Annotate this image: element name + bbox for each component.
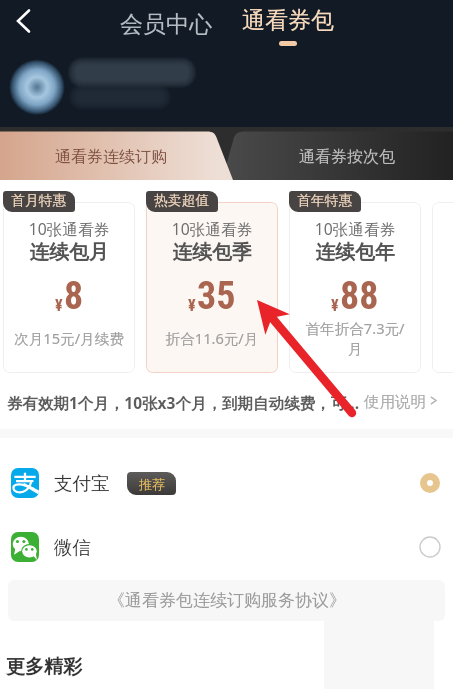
staticText: 通看券包 — [242, 6, 334, 35]
staticText: 首月特惠 — [11, 192, 67, 209]
staticText: ¥ — [188, 296, 196, 315]
button[interactable]: Back — [2, 3, 40, 41]
staticText: ¥ — [331, 296, 339, 315]
staticText: 折合11.6元/月 — [157, 328, 267, 348]
staticText: 10张通看券 — [289, 218, 421, 239]
staticText: 35 — [197, 274, 236, 319]
staticText: 10张通看券 — [146, 218, 278, 239]
staticText: 券有效期1个月，10张x3个月，到期自动续费，可... — [7, 392, 359, 413]
staticText: 使用说明 — [364, 392, 426, 412]
staticText: 连续包月 — [3, 240, 135, 265]
staticText: 首年特惠 — [297, 192, 353, 209]
staticText: 支付宝 — [54, 472, 110, 495]
button[interactable]: 10张通看券 — [289, 202, 421, 373]
button[interactable]: 10张通看券 — [3, 202, 135, 373]
staticText: 《通看券包连续订购服务协议》 — [108, 590, 346, 611]
staticText: 更多精彩 — [6, 655, 82, 679]
staticText: 会员中心 — [120, 10, 212, 39]
button[interactable]: 会员中心 — [112, 6, 219, 42]
button[interactable]: 《通看券包连续订购服务协议》 — [8, 580, 445, 621]
staticText: 88 — [340, 274, 379, 319]
button[interactable]: 10张通看券 — [146, 202, 278, 373]
button[interactable] — [432, 202, 453, 373]
staticText: 推荐 — [139, 476, 165, 492]
button[interactable]: 微信 — [0, 515, 453, 579]
staticText: 10张通看券 — [3, 218, 135, 239]
staticText: 次月15元/月续费 — [14, 328, 124, 348]
button[interactable]: 通看券包 — [235, 6, 340, 46]
staticText: 热卖超值 — [154, 192, 210, 209]
staticText: 8 — [64, 274, 84, 319]
button[interactable]: 通看券按次包 — [240, 133, 453, 180]
button[interactable]: 券有效期1个月，10张x3个月，到期自动续费，可... — [0, 386, 453, 418]
staticText: 首年折合7.3元/月 — [300, 318, 410, 358]
button[interactable]: 支付宝 — [0, 451, 453, 515]
staticText: 通看券连续订购 — [55, 147, 167, 167]
staticText: 连续包季 — [146, 240, 278, 265]
staticText: 通看券按次包 — [299, 147, 395, 167]
staticText: 连续包年 — [289, 240, 421, 265]
button[interactable]: 通看券连续订购 — [0, 133, 222, 180]
staticText: ¥ — [55, 296, 63, 315]
staticText: 微信 — [54, 536, 91, 559]
